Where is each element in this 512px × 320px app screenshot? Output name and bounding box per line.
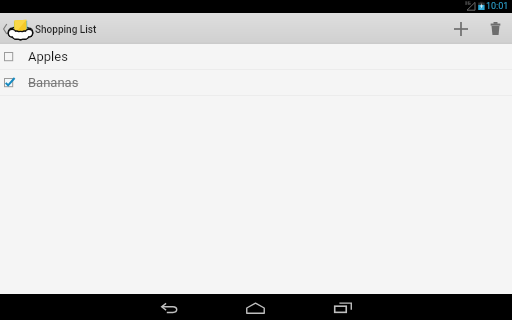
button[interactable]: Add item	[444, 13, 478, 44]
button[interactable]: Recent apps	[299, 294, 384, 320]
staticText: Bananas	[28, 75, 79, 90]
button[interactable]: Apples	[0, 44, 512, 69]
staticText: Apples	[28, 49, 68, 64]
staticText: 10:01	[486, 1, 509, 12]
staticText: Shopping List	[35, 24, 97, 36]
button[interactable]: Delete	[478, 13, 512, 44]
button[interactable]: Back	[129, 294, 214, 320]
button[interactable]: Bananas	[0, 70, 512, 95]
button[interactable]: Shopping List	[0, 16, 97, 42]
button[interactable]: Home	[214, 294, 299, 320]
